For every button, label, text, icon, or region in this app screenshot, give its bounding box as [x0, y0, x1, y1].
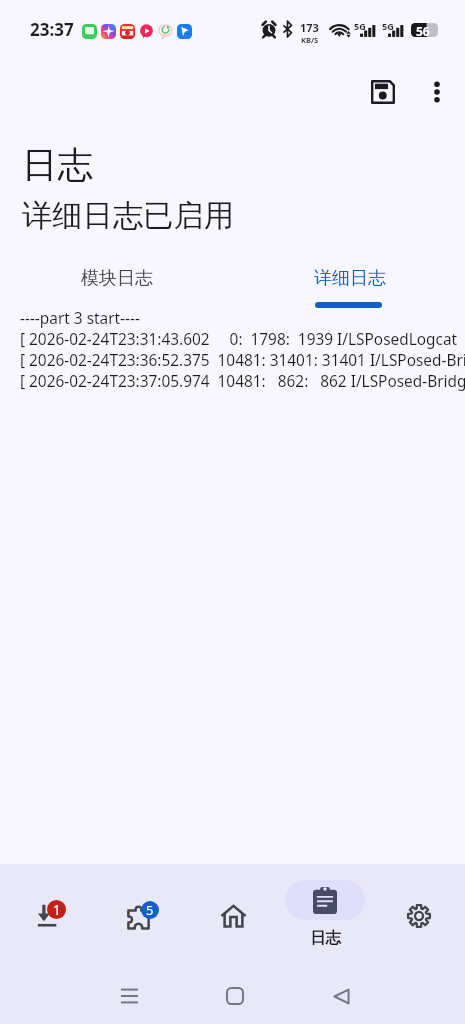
staticText: 日志 [310, 928, 341, 948]
staticText: 1 [53, 901, 61, 919]
staticText: 日志 [22, 143, 93, 188]
button[interactable]: 详细日志 [232, 255, 465, 311]
button[interactable]: Home [211, 972, 259, 1020]
staticText: 5G [382, 20, 394, 32]
staticText: 详细日志已启用 [22, 197, 235, 235]
staticText: ----part 3 start---- [20, 308, 140, 329]
button[interactable]: 模块日志 [0, 255, 232, 311]
staticText: 详细日志 [314, 267, 386, 290]
button[interactable]: Modules [104, 889, 172, 945]
staticText: [ 2026-02-24T23:37:05.974 10481: 862: 86… [20, 371, 465, 392]
staticText: [ 2026-02-24T23:31:43.602 0: 1798: 1939 … [20, 329, 458, 350]
staticText: [ 2026-02-24T23:36:52.375 10481: 31401: … [20, 350, 465, 371]
button[interactable]: Home [199, 888, 267, 944]
button[interactable]: 日志 [285, 872, 365, 936]
button[interactable]: Save log [359, 68, 407, 116]
staticText: 模块日志 [81, 267, 153, 290]
staticText: 5G [354, 20, 366, 32]
button[interactable]: Recents [105, 972, 153, 1020]
staticText: KB/S [301, 35, 319, 45]
button[interactable]: Settings [385, 888, 453, 944]
staticText: 5 [146, 901, 154, 919]
staticText: 23:37 [30, 18, 74, 41]
staticText: 173 [300, 20, 319, 35]
button[interactable]: More options [413, 68, 461, 116]
button[interactable]: Back [317, 972, 365, 1020]
button[interactable]: Downloads [13, 888, 81, 944]
staticText: 56 [416, 23, 430, 37]
